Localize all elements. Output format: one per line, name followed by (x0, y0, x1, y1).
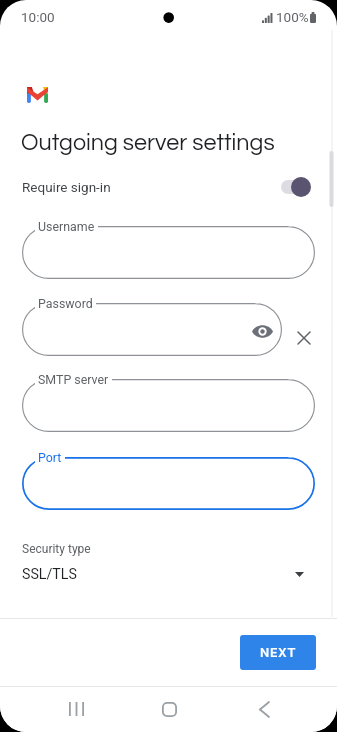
staticText: SSL/TLS (22, 566, 77, 583)
button[interactable]: Home (146, 694, 192, 724)
button[interactable]: Show password (240, 319, 284, 343)
staticText: NEXT (260, 645, 297, 660)
button[interactable]: Security type (0, 536, 337, 592)
staticText: Outgoing server settings (21, 131, 275, 155)
button[interactable]: Back (241, 694, 287, 724)
staticText: Port (38, 450, 62, 465)
button[interactable]: Password (0, 303, 337, 356)
staticText: 100% (276, 9, 309, 25)
staticText: SMTP server (38, 372, 109, 387)
staticText: Username (38, 219, 95, 234)
button[interactable]: SMTP server (0, 379, 337, 432)
staticText: 10:00 (21, 9, 55, 25)
button[interactable]: Require sign-in (281, 177, 311, 197)
staticText: Password (38, 296, 93, 311)
button[interactable]: Clear password (292, 326, 316, 350)
button[interactable]: Username (0, 226, 337, 279)
staticText: Require sign-in (22, 179, 111, 195)
button[interactable]: NEXT (240, 635, 316, 670)
button[interactable]: Port (0, 457, 337, 510)
staticText: Security type (22, 542, 91, 556)
button[interactable]: Recent apps (53, 694, 99, 724)
